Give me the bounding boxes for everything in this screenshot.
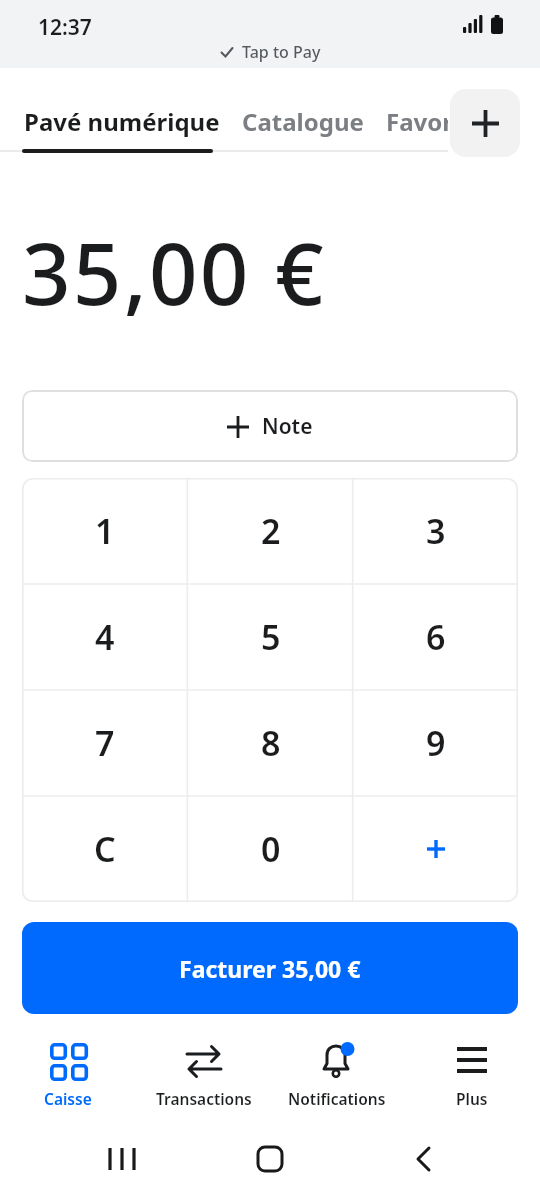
staticText: 8 [261,720,281,766]
button[interactable] [412,1146,436,1172]
staticText: C [94,826,116,872]
button[interactable]: 1 [22,478,188,584]
staticText: 35,00 € [22,214,326,330]
staticText: 7 [95,720,115,766]
button[interactable]: 4 [22,584,188,690]
staticText: Transactions [156,1088,252,1109]
staticText: 0 [261,826,281,872]
button[interactable]: 0 [188,796,353,902]
button[interactable]: Favoris [386,105,473,138]
staticText: 3 [426,508,446,554]
staticText: 1 [95,508,115,554]
staticText: 5 [261,614,281,660]
button[interactable]: Transactions [129,1030,279,1115]
button[interactable]: C [22,796,188,902]
button[interactable] [353,796,518,902]
staticText: 12:37 [38,13,92,42]
staticText: Tap to Pay [242,41,321,63]
staticText: 2 [261,508,281,554]
button[interactable]: Pavé numérique [24,105,220,138]
staticText: 6 [426,614,446,660]
button[interactable] [107,1146,137,1172]
button[interactable]: Facturer 35,00 € [22,922,518,1014]
button[interactable]: Plus [397,1030,540,1115]
button[interactable] [256,1146,284,1172]
button[interactable]: 8 [188,690,353,796]
staticText: Plus [456,1088,488,1109]
button[interactable]: 6 [353,584,518,690]
button[interactable]: 7 [22,690,188,796]
button[interactable]: 9 [353,690,518,796]
button[interactable]: 2 [188,478,353,584]
staticText: Facturer 35,00 € [179,953,361,984]
button[interactable]: 3 [353,478,518,584]
staticText: Notifications [288,1088,386,1109]
staticText: 9 [426,720,446,766]
button[interactable]: 5 [188,584,353,690]
button[interactable]: Caisse [0,1030,143,1115]
button[interactable]: Catalogue [242,105,364,138]
staticText: 4 [95,614,115,660]
button[interactable]: Note [22,390,518,462]
staticText: Caisse [44,1088,92,1109]
staticText: Note [262,412,313,441]
button[interactable]: Notifications [262,1030,412,1115]
button[interactable] [450,89,520,157]
